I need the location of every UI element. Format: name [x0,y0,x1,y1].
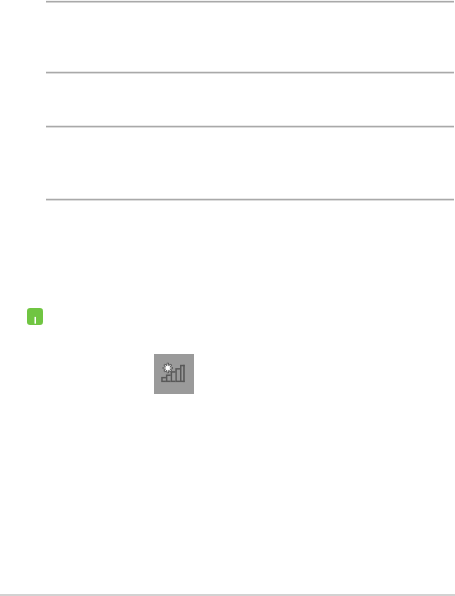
button[interactable]: Info [27,308,43,325]
button[interactable]: Image placeholder [154,354,194,394]
